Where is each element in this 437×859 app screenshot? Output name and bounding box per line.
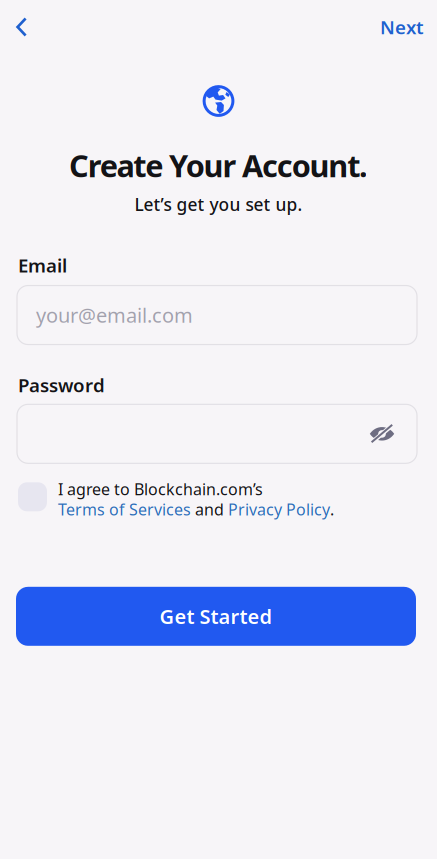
staticText: Create Your Account. (69, 145, 368, 186)
staticText: Terms of Services (58, 499, 191, 520)
button[interactable]: Agree to terms (18, 482, 47, 511)
staticText: Get Started (159, 603, 272, 630)
staticText: Next (380, 15, 424, 39)
staticText: and (191, 499, 228, 520)
button[interactable]: Privacy Policy (228, 499, 330, 520)
staticText: I agree to Blockchain.com’s (58, 478, 263, 499)
staticText: . (330, 499, 334, 520)
button[interactable]: Get Started (16, 587, 416, 646)
button[interactable]: Next (368, 7, 437, 47)
staticText: Password (18, 372, 105, 397)
staticText: Let’s get you set up. (134, 193, 302, 216)
button[interactable]: Terms of Services (58, 499, 191, 520)
staticText: Privacy Policy (228, 499, 330, 520)
button[interactable]: Back (0, 9, 40, 45)
staticText: Email (18, 253, 67, 277)
staticText: your@email.com (36, 302, 193, 328)
button[interactable]: Show password (359, 416, 417, 452)
